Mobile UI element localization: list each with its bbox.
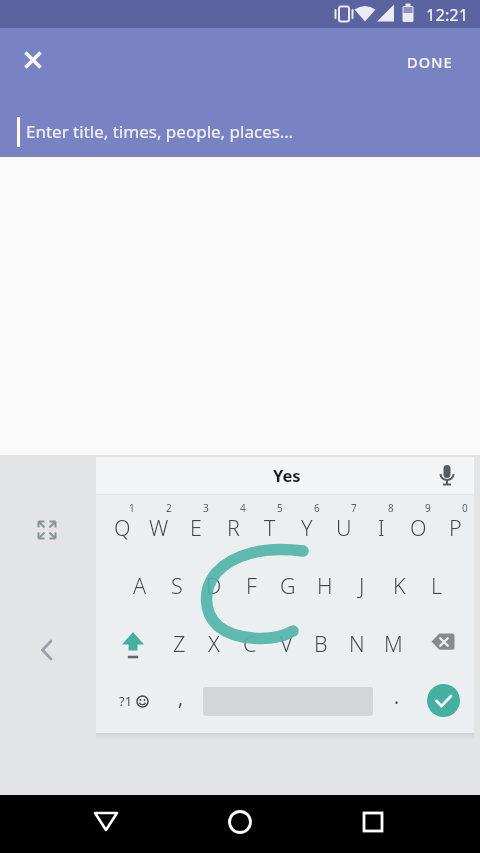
staticText: G bbox=[280, 571, 296, 600]
button[interactable]: D bbox=[194, 563, 234, 607]
staticText: U bbox=[336, 513, 352, 542]
staticText: M bbox=[384, 629, 403, 658]
button[interactable]: Enter title, times, people, places… bbox=[0, 96, 480, 157]
staticText: W bbox=[149, 513, 169, 542]
button[interactable]: , bbox=[169, 680, 193, 716]
staticText: Y bbox=[301, 513, 313, 542]
button[interactable] bbox=[115, 625, 151, 661]
button[interactable]: S bbox=[157, 563, 197, 607]
button[interactable]: Yes bbox=[242, 456, 332, 494]
staticText: , bbox=[178, 685, 184, 711]
staticText: S bbox=[171, 571, 183, 600]
staticText: ?1 bbox=[119, 692, 133, 710]
button[interactable] bbox=[13, 40, 53, 80]
staticText: 8 bbox=[388, 501, 394, 515]
button[interactable]: DONE bbox=[398, 44, 462, 80]
staticText: 6 bbox=[314, 501, 320, 515]
button[interactable]: M bbox=[373, 621, 413, 665]
staticText: J bbox=[359, 571, 365, 600]
staticText: R bbox=[227, 513, 240, 542]
button[interactable] bbox=[216, 798, 264, 846]
button[interactable]: J bbox=[342, 563, 382, 607]
button[interactable]: A bbox=[120, 563, 160, 607]
button[interactable]: Z bbox=[159, 621, 199, 665]
button[interactable]: U bbox=[324, 505, 364, 549]
button[interactable] bbox=[33, 632, 61, 664]
staticText: N bbox=[349, 629, 365, 658]
staticText: F bbox=[246, 571, 257, 600]
staticText: 7 bbox=[351, 501, 357, 515]
staticText: Yes bbox=[273, 464, 301, 486]
button[interactable]: B bbox=[301, 621, 341, 665]
button[interactable] bbox=[431, 458, 463, 494]
button[interactable]: C bbox=[230, 621, 270, 665]
button[interactable]: W bbox=[139, 505, 179, 549]
button[interactable]: R bbox=[213, 505, 253, 549]
staticText: H bbox=[317, 571, 333, 600]
button[interactable] bbox=[82, 798, 130, 846]
staticText: Q bbox=[114, 513, 131, 542]
button[interactable]: N bbox=[337, 621, 377, 665]
button[interactable]: O bbox=[398, 505, 438, 549]
staticText: V bbox=[280, 629, 293, 658]
staticText: O bbox=[410, 513, 427, 542]
button[interactable]: X bbox=[194, 621, 234, 665]
staticText: B bbox=[314, 629, 328, 658]
button[interactable]: G bbox=[268, 563, 308, 607]
button[interactable]: E bbox=[176, 505, 216, 549]
staticText: X bbox=[208, 629, 220, 658]
button[interactable]: . bbox=[385, 679, 409, 715]
button[interactable] bbox=[427, 684, 460, 717]
button[interactable]: I bbox=[361, 505, 401, 549]
button[interactable]: T bbox=[250, 505, 290, 549]
button[interactable]: V bbox=[266, 621, 306, 665]
staticText: 4 bbox=[240, 501, 246, 515]
button[interactable]: ?1 bbox=[110, 683, 156, 719]
staticText: Enter title, times, people, places… bbox=[26, 120, 294, 143]
staticText: D bbox=[206, 571, 222, 600]
button[interactable] bbox=[31, 514, 63, 546]
staticText: P bbox=[449, 513, 462, 542]
button[interactable]: P bbox=[435, 505, 475, 549]
button[interactable]: Y bbox=[287, 505, 327, 549]
staticText: C bbox=[243, 629, 257, 658]
button[interactable]: L bbox=[417, 563, 457, 607]
button[interactable]: Q bbox=[102, 505, 142, 549]
staticText: 9 bbox=[425, 501, 431, 515]
button[interactable] bbox=[427, 625, 463, 661]
button[interactable]: H bbox=[305, 563, 345, 607]
staticText: T bbox=[264, 513, 276, 542]
button[interactable]: K bbox=[379, 563, 419, 607]
button[interactable]: F bbox=[231, 563, 271, 607]
staticText: K bbox=[393, 571, 406, 600]
staticText: . bbox=[394, 684, 400, 710]
staticText: 12:21 bbox=[426, 3, 469, 25]
staticText: DONE bbox=[407, 52, 453, 72]
staticText: 2 bbox=[166, 501, 172, 515]
staticText: L bbox=[431, 571, 443, 600]
button[interactable] bbox=[349, 798, 397, 846]
staticText: A bbox=[133, 571, 147, 600]
staticText: 3 bbox=[203, 501, 209, 515]
staticText: E bbox=[190, 513, 202, 542]
staticText: 0 bbox=[462, 501, 468, 515]
staticText: I bbox=[378, 513, 385, 542]
staticText: Z bbox=[173, 629, 186, 658]
staticText: 1 bbox=[129, 501, 135, 515]
staticText: 5 bbox=[277, 501, 283, 515]
